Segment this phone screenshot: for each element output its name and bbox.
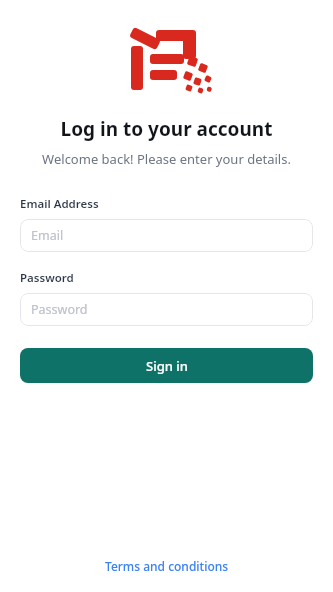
button[interactable]: Password xyxy=(20,293,313,326)
staticText: Email xyxy=(31,227,64,244)
staticText: Sign in xyxy=(146,357,188,375)
button[interactable]: Terms and conditions xyxy=(97,554,237,578)
button[interactable]: Email xyxy=(20,219,313,252)
button[interactable]: Sign in xyxy=(20,348,313,383)
other: Logo xyxy=(122,24,212,96)
staticText: Log in to your account xyxy=(0,116,333,142)
staticText: Password xyxy=(31,301,88,318)
staticText: Email Address xyxy=(20,196,99,212)
staticText: Welcome back! Please enter your details. xyxy=(0,150,333,168)
staticText: Terms and conditions xyxy=(105,558,229,574)
staticText: Password xyxy=(20,270,74,286)
